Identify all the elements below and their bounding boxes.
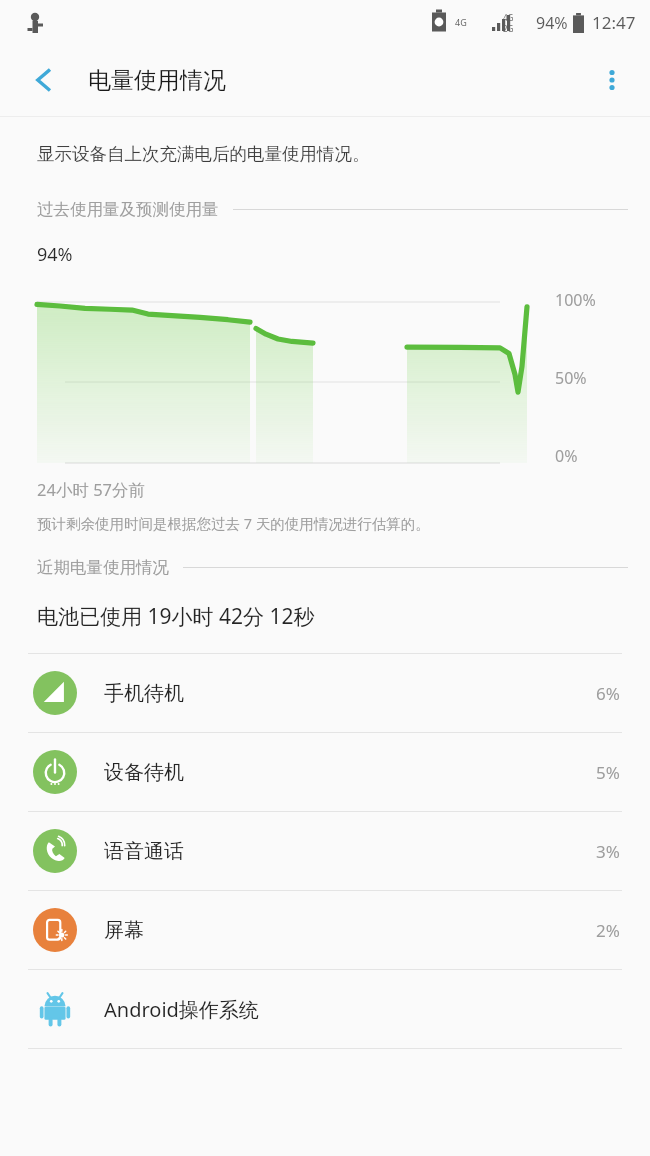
- staticText: 5%: [596, 761, 620, 784]
- staticText: 过去使用量及预测使用量: [37, 199, 219, 220]
- staticText: 电池已使用 19小时 42分 12秒: [37, 602, 315, 631]
- button[interactable]: 语音通话: [0, 812, 650, 890]
- staticText: 2%: [596, 919, 620, 942]
- staticText: 屏幕: [104, 918, 144, 943]
- staticText: 100%: [555, 289, 596, 311]
- button[interactable]: 手机待机: [0, 654, 650, 732]
- staticText: 6%: [596, 682, 620, 705]
- staticText: 手机待机: [104, 681, 184, 706]
- staticText: 24小时 57分前: [37, 478, 146, 501]
- button[interactable]: 屏幕: [0, 891, 650, 969]
- staticText: 12:47: [592, 11, 636, 34]
- button[interactable]: 设备待机: [0, 733, 650, 811]
- staticText: 设备待机: [104, 760, 184, 785]
- staticText: 94%: [37, 242, 73, 267]
- staticText: 显示设备自上次充满电后的电量使用情况。: [37, 143, 370, 165]
- button[interactable]: More options: [586, 54, 638, 106]
- staticText: 50%: [555, 367, 587, 389]
- staticText: 0%: [555, 445, 578, 467]
- staticText: Android操作系统: [104, 996, 259, 1023]
- staticText: 近期电量使用情况: [37, 557, 169, 578]
- staticText: 2G: [503, 23, 514, 34]
- staticText: 电量使用情况: [88, 66, 226, 95]
- staticText: 4G: [503, 12, 514, 23]
- staticText: 4G: [455, 16, 467, 28]
- staticText: 3%: [596, 840, 620, 863]
- button[interactable]: Back: [16, 52, 72, 108]
- button[interactable]: Android操作系统: [0, 970, 650, 1048]
- staticText: 94%: [536, 12, 568, 34]
- staticText: 预计剩余使用时间是根据您过去 7 天的使用情况进行估算的。: [37, 513, 430, 533]
- staticText: 语音通话: [104, 839, 184, 864]
